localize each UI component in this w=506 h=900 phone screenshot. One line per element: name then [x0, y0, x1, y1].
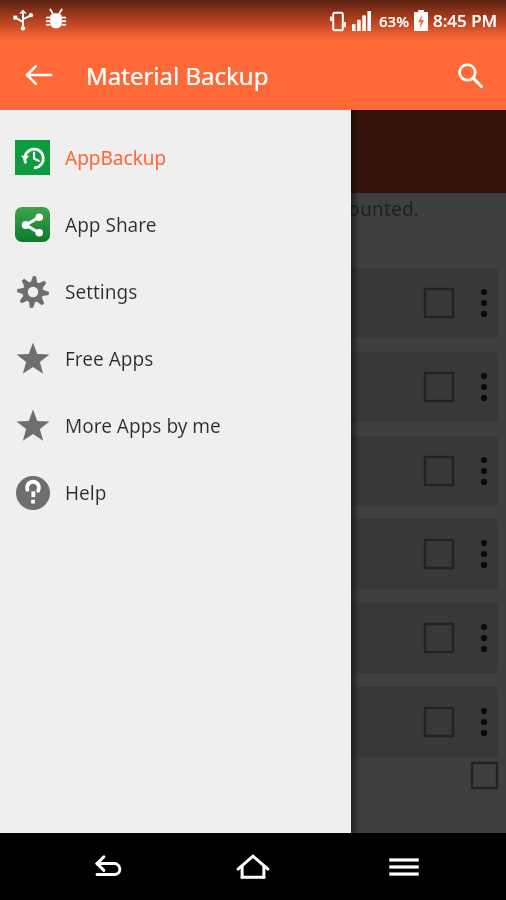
staticText: Settings	[65, 279, 138, 305]
button[interactable]: Back	[82, 839, 138, 895]
button[interactable]	[8, 436, 498, 506]
button[interactable]	[8, 519, 498, 589]
button[interactable]: Recent apps	[376, 839, 432, 895]
button[interactable]: Search	[446, 51, 494, 99]
button[interactable]	[8, 352, 498, 422]
button[interactable]	[8, 687, 498, 757]
button[interactable]: AppBackup	[0, 124, 351, 191]
staticText: Material Backup	[86, 59, 269, 92]
staticText: More Apps by me	[65, 413, 221, 439]
staticText: AppBackup	[65, 145, 167, 171]
staticText: 8:45 PM	[433, 9, 498, 32]
button[interactable]: Free Apps	[0, 325, 351, 392]
button[interactable]: Back	[14, 51, 62, 99]
staticText: 63%	[379, 11, 409, 31]
button[interactable]: Settings	[0, 258, 351, 325]
button[interactable]	[8, 268, 498, 338]
staticText: Help	[65, 480, 107, 506]
button[interactable]: Help	[0, 459, 351, 526]
button[interactable]: App Share	[0, 191, 351, 258]
staticText: App Share	[65, 212, 157, 238]
staticText: BACKUP RESTORE	[40, 140, 250, 163]
button[interactable]: More Apps by me	[0, 392, 351, 459]
staticText: Free Apps	[65, 346, 154, 372]
button[interactable]: Home	[225, 839, 281, 895]
button[interactable]	[8, 603, 498, 673]
staticText: SD Card is Mounted.	[235, 196, 419, 222]
